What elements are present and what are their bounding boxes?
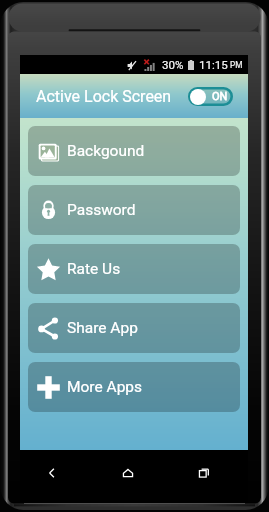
staticText: ON xyxy=(212,90,228,103)
staticText: Password xyxy=(67,201,136,219)
staticText: Backgound xyxy=(67,142,145,160)
button[interactable]: Backgound xyxy=(28,126,240,176)
staticText: PM xyxy=(230,60,243,70)
button[interactable]: Password xyxy=(28,185,240,235)
staticText: 11:15 xyxy=(199,58,228,72)
button[interactable]: Home xyxy=(114,459,142,487)
button[interactable]: Rate Us xyxy=(28,244,240,294)
staticText: Active Lock Screen xyxy=(36,87,172,106)
button[interactable]: Recent apps xyxy=(190,459,218,487)
staticText: Rate Us xyxy=(67,260,121,278)
staticText: Share App xyxy=(67,319,138,337)
button[interactable]: More Apps xyxy=(28,362,240,412)
staticText: More Apps xyxy=(67,378,143,396)
button[interactable]: Toggle active lock screen xyxy=(188,87,233,106)
staticText: 30% xyxy=(162,58,184,72)
button[interactable]: Back xyxy=(38,459,66,487)
button[interactable]: Share App xyxy=(28,303,240,353)
